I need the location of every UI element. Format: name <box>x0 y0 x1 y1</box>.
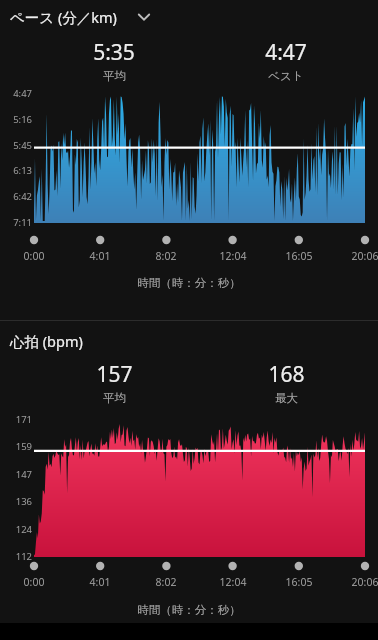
staticText: 4:47 <box>2 87 32 100</box>
staticText: 0:00 <box>10 249 58 263</box>
staticText: 6:42 <box>2 190 32 203</box>
staticText: 159 <box>2 440 32 453</box>
staticText: 平均 <box>103 391 126 405</box>
staticText: 4:47 <box>265 38 307 67</box>
other: Change metric <box>133 6 155 28</box>
staticText: 4:01 <box>76 575 124 589</box>
button[interactable]: 心拍 (bpm) <box>10 331 83 351</box>
staticText: 157 <box>96 360 133 389</box>
staticText: 6:13 <box>2 164 32 177</box>
staticText: 時間（時：分：秒） <box>0 276 378 290</box>
staticText: 時間（時：分：秒） <box>0 603 378 617</box>
button[interactable]: ペース (分／km) <box>10 6 155 28</box>
staticText: 5:45 <box>2 139 32 152</box>
staticText: 112 <box>2 550 32 563</box>
staticText: 最大 <box>275 391 298 405</box>
staticText: 4:01 <box>76 249 124 263</box>
staticText: 124 <box>2 523 32 536</box>
staticText: ベスト <box>268 69 304 83</box>
staticText: 12:04 <box>209 575 257 589</box>
staticText: 168 <box>268 360 305 389</box>
staticText: 136 <box>2 495 32 508</box>
staticText: 12:04 <box>209 249 257 263</box>
staticText: 5:16 <box>2 113 32 126</box>
staticText: 心拍 (bpm) <box>10 331 83 351</box>
staticText: 171 <box>2 413 32 426</box>
staticText: 7:11 <box>2 216 32 229</box>
staticText: 16:05 <box>275 575 323 589</box>
staticText: ペース (分／km) <box>10 7 117 27</box>
staticText: 20:06 <box>341 575 378 589</box>
staticText: 平均 <box>103 69 126 83</box>
staticText: 20:06 <box>341 249 378 263</box>
staticText: 0:00 <box>10 575 58 589</box>
staticText: 8:02 <box>142 575 190 589</box>
staticText: 16:05 <box>275 249 323 263</box>
staticText: 147 <box>2 468 32 481</box>
staticText: 8:02 <box>142 249 190 263</box>
staticText: 5:35 <box>93 38 135 67</box>
